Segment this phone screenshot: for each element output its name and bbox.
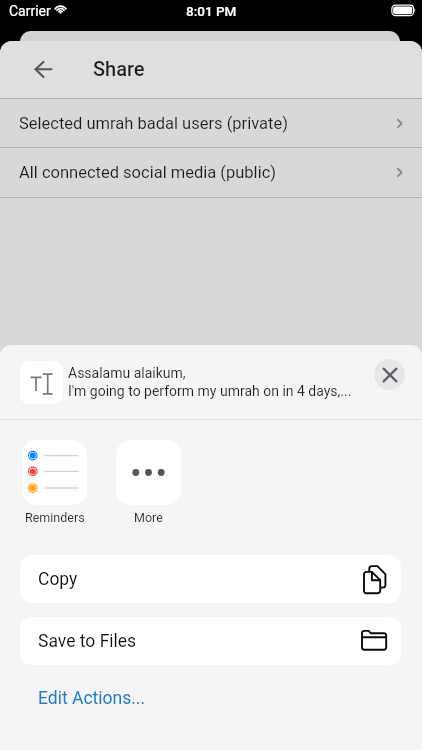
- staticText: Carrier: [9, 3, 51, 19]
- button[interactable]: More: [116, 440, 181, 525]
- staticText: Copy: [38, 569, 78, 590]
- staticText: Selected umrah badal users (private): [19, 114, 288, 133]
- button[interactable]: Save to Files: [20, 617, 401, 665]
- staticText: I'm going to perform my umrah on in 4 da…: [68, 383, 352, 399]
- button[interactable]: Edit Actions...: [26, 682, 158, 715]
- staticText: 8:01 PM: [186, 3, 237, 19]
- staticText: Save to Files: [38, 631, 137, 652]
- staticText: All connected social media (public): [19, 163, 277, 182]
- button[interactable]: Selected umrah badal users (private): [0, 99, 422, 147]
- button[interactable]: Back: [24, 48, 63, 92]
- button[interactable]: All connected social media (public): [0, 148, 422, 197]
- staticText: More: [134, 510, 163, 525]
- button[interactable]: Copy: [20, 555, 401, 603]
- staticText: Edit Actions...: [38, 688, 146, 709]
- staticText: Assalamu alaikum,: [68, 365, 186, 381]
- button[interactable]: Close: [374, 359, 405, 390]
- staticText: Share: [93, 57, 145, 80]
- button[interactable]: Reminders: [22, 440, 87, 525]
- staticText: Reminders: [25, 510, 85, 525]
